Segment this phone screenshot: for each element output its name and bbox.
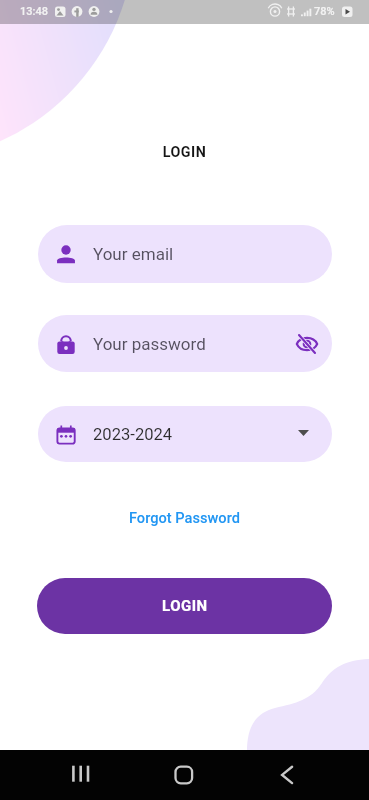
button[interactable]: Home (153, 750, 215, 800)
staticText: 78% (314, 5, 335, 18)
button[interactable]: Back (256, 750, 318, 800)
button[interactable]: Show password (287, 324, 327, 364)
button[interactable]: Forgot Password (129, 509, 240, 526)
button[interactable]: Recent apps (50, 750, 112, 800)
staticText: 2023-2024 (93, 425, 173, 444)
staticText: Forgot Password (129, 509, 240, 526)
button[interactable]: Select session year (283, 413, 323, 453)
staticText: Your password (93, 334, 206, 354)
button[interactable]: Your email (38, 225, 332, 283)
staticText: Your email (93, 244, 174, 264)
button[interactable]: LOGIN (37, 578, 332, 634)
staticText: LOGIN (162, 597, 208, 615)
button[interactable]: 2023-2024 (38, 406, 332, 462)
staticText: 13:48 (20, 5, 48, 18)
staticText: LOGIN (0, 144, 369, 161)
button[interactable]: Your password (38, 315, 332, 372)
